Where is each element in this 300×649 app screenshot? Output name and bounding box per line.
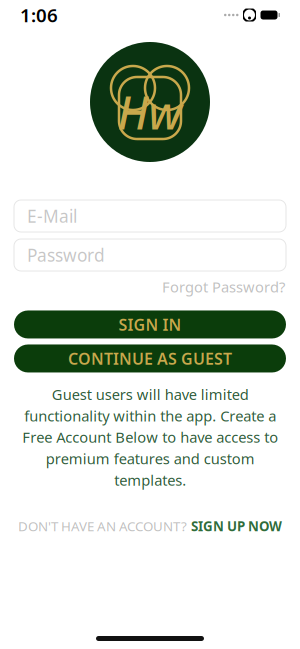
- staticText: DON'T HAVE AN ACCOUNT?: [18, 517, 187, 535]
- staticText: Password: [27, 243, 105, 266]
- staticText: Guest users will have limited functional…: [22, 384, 278, 490]
- staticText: Forgot Password?: [162, 277, 285, 296]
- staticText: CONTINUE AS GUEST: [68, 348, 232, 369]
- staticText: E-Mail: [27, 204, 77, 227]
- staticText: SIGN IN: [118, 314, 181, 335]
- button[interactable]: Password: [14, 239, 286, 271]
- staticText: SIGN UP NOW: [191, 517, 282, 535]
- button[interactable]: Forgot Password?: [162, 274, 285, 299]
- button[interactable]: CONTINUE AS GUEST: [14, 344, 286, 372]
- button[interactable]: SIGN IN: [14, 310, 286, 338]
- button[interactable]: DON'T HAVE AN ACCOUNT?: [8, 511, 292, 541]
- staticText: Hw: [117, 82, 182, 142]
- staticText: 1:06: [20, 3, 58, 27]
- button[interactable]: E-Mail: [14, 200, 286, 232]
